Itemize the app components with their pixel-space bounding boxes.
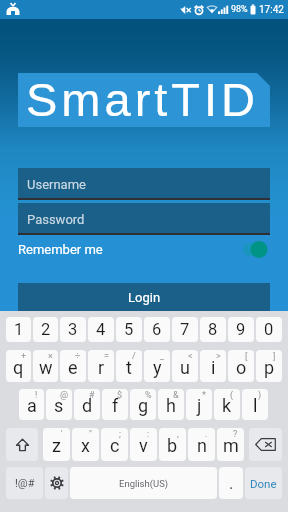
staticText: < <box>188 351 193 362</box>
button[interactable]: Remember me <box>14 238 272 260</box>
staticText: 1 <box>14 320 24 339</box>
button[interactable]: Done <box>245 467 282 499</box>
staticText: b <box>167 435 178 456</box>
staticText: ' <box>61 429 63 440</box>
staticText: . <box>229 474 234 493</box>
staticText: n <box>197 435 207 456</box>
button[interactable]: * <box>186 389 212 420</box>
button[interactable]: ] <box>256 350 282 382</box>
button[interactable]: $ <box>102 389 128 420</box>
button[interactable]: 5 <box>116 317 142 342</box>
staticText: , <box>177 429 179 440</box>
staticText: Password <box>27 212 85 227</box>
staticText: j <box>197 395 202 416</box>
button[interactable]: . <box>188 428 215 461</box>
staticText: > <box>216 351 221 362</box>
staticText: Remember me <box>18 242 103 257</box>
staticText: k <box>222 395 232 416</box>
staticText: : <box>147 429 150 440</box>
button[interactable]: 7 <box>172 317 198 342</box>
button[interactable]: / <box>116 350 142 382</box>
button[interactable]: ? <box>217 428 244 461</box>
button[interactable]: = <box>88 350 114 382</box>
staticText: h <box>166 395 176 416</box>
staticText: d <box>82 395 93 416</box>
staticText: 3 <box>68 320 78 339</box>
staticText: r <box>98 357 105 378</box>
staticText: [ <box>245 351 248 362</box>
staticText: l <box>253 395 258 416</box>
staticText: s <box>54 395 64 416</box>
button[interactable]: Password <box>18 203 270 235</box>
staticText: t <box>126 357 132 378</box>
staticText: Done <box>250 477 277 490</box>
button[interactable]: Shift <box>6 428 38 461</box>
button[interactable]: # <box>74 389 100 420</box>
button[interactable]: 3 <box>60 317 86 342</box>
staticText: i <box>211 357 216 378</box>
staticText: $ <box>117 390 123 401</box>
button[interactable]: 4 <box>88 317 114 342</box>
staticText: # <box>89 390 95 401</box>
staticText: w <box>39 357 53 378</box>
button[interactable]: !@# <box>6 467 43 499</box>
button[interactable]: ( <box>214 389 240 420</box>
staticText: ( <box>230 390 234 401</box>
button[interactable]: [ <box>228 350 254 382</box>
staticText: _ <box>160 351 165 362</box>
staticText: 2 <box>41 320 51 339</box>
button[interactable]: < <box>172 350 198 382</box>
staticText: English(US) <box>119 478 169 489</box>
staticText: x <box>81 435 90 456</box>
staticText: 17:42 <box>259 4 284 16</box>
button[interactable]: % <box>130 389 156 420</box>
staticText: ! <box>35 390 38 401</box>
button[interactable]: English(US) <box>70 467 217 499</box>
button[interactable]: ÷ <box>60 350 86 382</box>
staticText: × <box>48 351 53 362</box>
button[interactable]: 2 <box>33 317 58 342</box>
button[interactable]: ! <box>19 389 44 420</box>
button[interactable]: Settings <box>45 467 68 499</box>
staticText: o <box>236 357 247 378</box>
staticText: 9 <box>236 320 246 339</box>
staticText: m <box>223 435 239 456</box>
button[interactable]: Username <box>18 168 270 200</box>
button[interactable]: 0 <box>256 317 282 342</box>
button[interactable]: Login <box>18 283 270 311</box>
button[interactable]: Backspace <box>249 428 282 461</box>
staticText: v <box>139 435 148 456</box>
staticText: 0 <box>264 320 274 339</box>
button[interactable]: @ <box>46 389 72 420</box>
button[interactable]: 8 <box>200 317 226 342</box>
button[interactable]: : <box>130 428 157 461</box>
staticText: ; <box>119 429 121 440</box>
staticText: Username <box>27 177 86 192</box>
staticText: Login <box>128 290 161 305</box>
button[interactable]: ' <box>43 428 70 461</box>
button[interactable]: & <box>158 389 184 420</box>
staticText: e <box>68 357 78 378</box>
button[interactable]: _ <box>144 350 170 382</box>
button[interactable]: > <box>200 350 226 382</box>
button[interactable]: + <box>6 350 31 382</box>
staticText: 7 <box>180 320 190 339</box>
staticText: u <box>180 357 190 378</box>
button[interactable]: ) <box>242 389 268 420</box>
button[interactable]: , <box>159 428 186 461</box>
staticText: p <box>264 357 275 378</box>
button[interactable]: " <box>72 428 99 461</box>
staticText: 6 <box>152 320 162 339</box>
staticText: @ <box>60 390 69 401</box>
staticText: " <box>89 429 92 440</box>
button[interactable]: ; <box>101 428 128 461</box>
button[interactable]: × <box>33 350 58 382</box>
button[interactable]: 6 <box>144 317 170 342</box>
staticText: ? <box>233 429 238 440</box>
button[interactable]: 9 <box>228 317 254 342</box>
staticText: + <box>21 351 27 362</box>
staticText: 4 <box>96 320 106 339</box>
button[interactable]: . <box>219 467 243 499</box>
button[interactable]: 1 <box>6 317 31 342</box>
staticText: SmartTID <box>26 73 260 126</box>
